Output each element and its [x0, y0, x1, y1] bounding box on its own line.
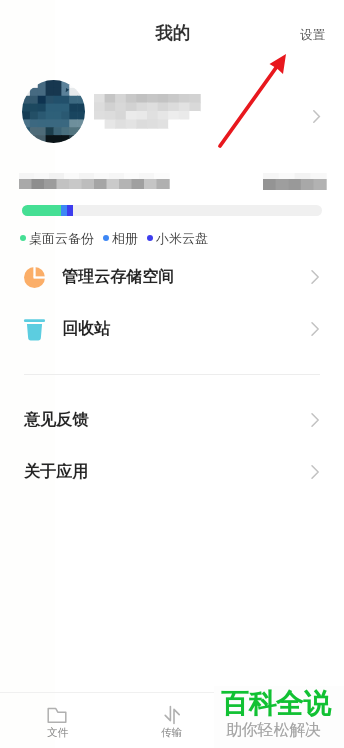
button[interactable]: 回收站 — [0, 303, 344, 355]
staticText: 我的 — [276, 726, 297, 739]
staticText: 管理云存储空间 — [62, 267, 174, 287]
staticText: 助你轻松解决 — [226, 720, 321, 740]
staticText: 传输 — [161, 726, 182, 739]
staticText: 百科全说 — [221, 687, 331, 722]
staticText: 设置 — [300, 27, 325, 43]
button[interactable]: 管理云存储空间 — [0, 251, 344, 303]
staticText: 小米云盘 — [156, 230, 208, 246]
staticText: 回收站 — [62, 319, 110, 339]
staticText: 意见反馈 — [24, 410, 88, 430]
staticText: 我的 — [155, 22, 190, 44]
button[interactable]: 账号详情 — [0, 72, 344, 152]
other: 账号详情 — [312, 110, 321, 123]
button[interactable]: 意见反馈 — [0, 394, 344, 446]
staticText: 关于应用 — [24, 462, 88, 482]
button[interactable]: 传输 — [114, 692, 229, 748]
button[interactable]: 设置 — [294, 23, 331, 47]
button[interactable]: 我的 — [229, 692, 344, 748]
staticText: 文件 — [47, 726, 68, 739]
button[interactable]: 文件 — [0, 692, 114, 748]
button[interactable]: 关于应用 — [0, 446, 344, 498]
staticText: 相册 — [112, 230, 138, 246]
staticText: 桌面云备份 — [29, 230, 94, 246]
